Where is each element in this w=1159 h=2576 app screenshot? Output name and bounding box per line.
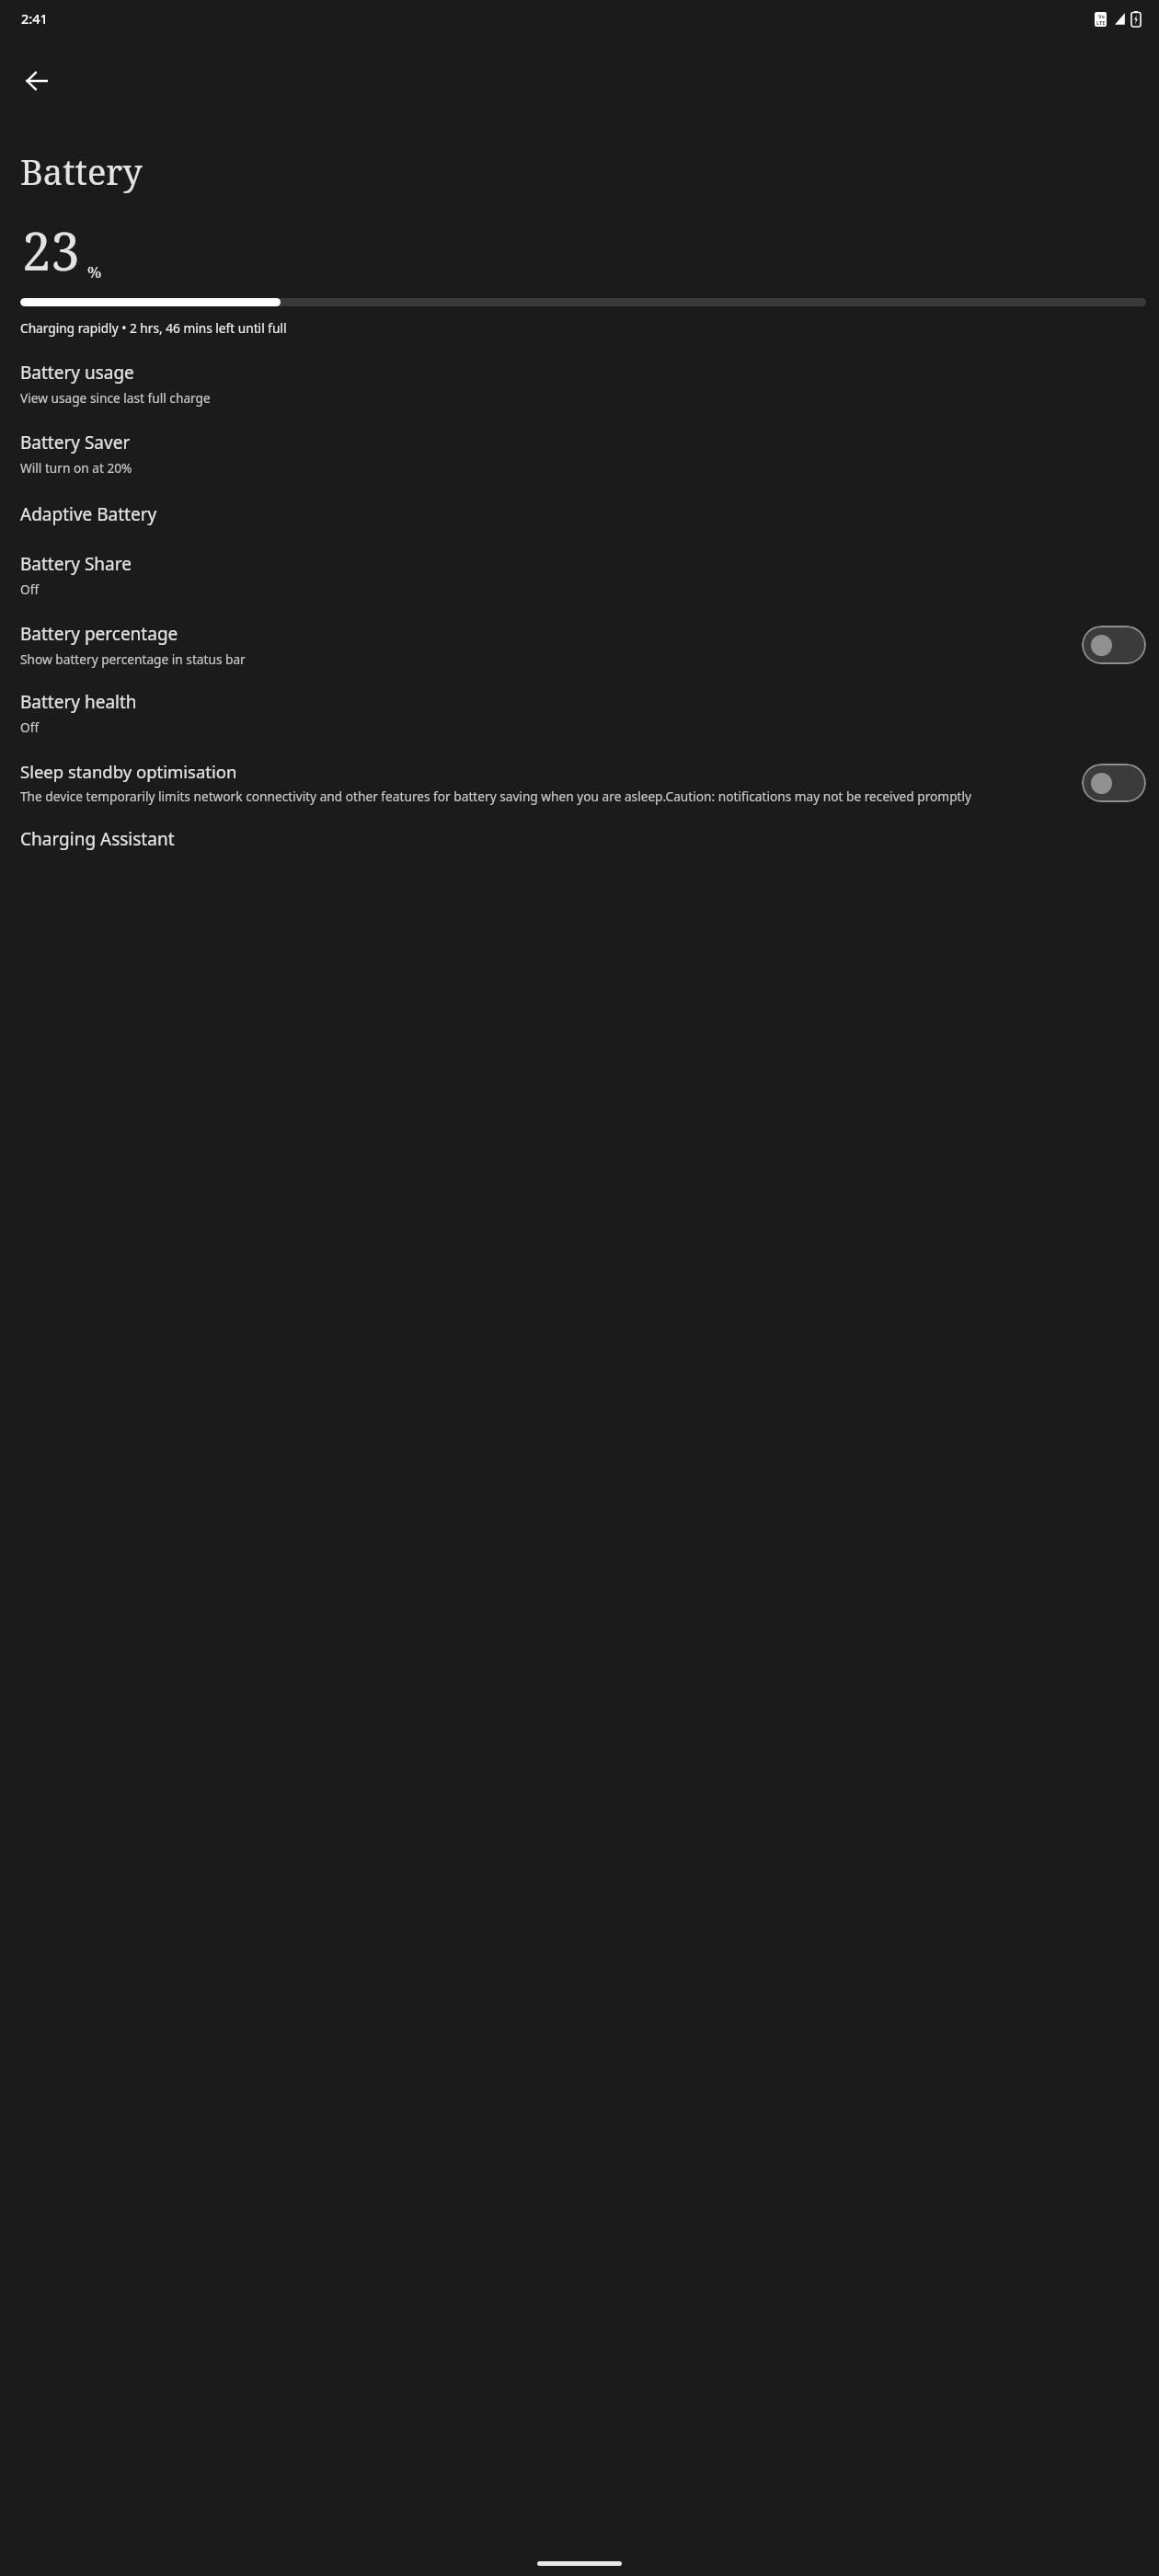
staticText: Battery percentage [20, 622, 178, 646]
staticText: Show battery percentage in status bar [20, 650, 246, 668]
staticText: Battery Share [20, 552, 132, 576]
staticText: The device temporarily limits network co… [20, 788, 972, 805]
button[interactable]: Battery Saver [0, 431, 1159, 477]
staticText: Sleep standby optimisation [20, 760, 237, 783]
button[interactable]: Battery health [0, 690, 1159, 736]
staticText: Off [20, 719, 40, 736]
staticText: Battery health [20, 690, 137, 714]
button[interactable]: Battery percentage [0, 622, 1159, 668]
staticText: Vo [1098, 13, 1105, 19]
staticText: LTE [1096, 19, 1106, 26]
staticText: 23 [22, 215, 80, 285]
button[interactable]: Charging Assistant [0, 827, 1159, 851]
button[interactable]: Battery percentage toggle [1082, 626, 1146, 664]
staticText: Charging rapidly • 2 hrs, 46 mins left u… [20, 319, 287, 337]
staticText: Adaptive Battery [20, 502, 157, 526]
button[interactable]: Adaptive Battery [0, 502, 1159, 526]
staticText: Battery usage [20, 361, 134, 385]
button[interactable]: Battery Share [0, 552, 1159, 598]
staticText: 2:41 [21, 9, 48, 28]
staticText: Off [20, 581, 40, 598]
button[interactable]: Sleep standby optimisation toggle [1082, 764, 1146, 802]
staticText: Will turn on at 20% [20, 459, 132, 477]
staticText: % [87, 261, 102, 282]
button[interactable]: Sleep standby optimisation [0, 760, 1159, 805]
staticText: Battery Saver [20, 431, 131, 454]
button[interactable]: Battery usage [0, 361, 1159, 407]
staticText: Charging Assistant [20, 827, 175, 851]
button[interactable]: Back [11, 55, 63, 107]
staticText: Battery [20, 147, 143, 195]
staticText: View usage since last full charge [20, 389, 211, 407]
